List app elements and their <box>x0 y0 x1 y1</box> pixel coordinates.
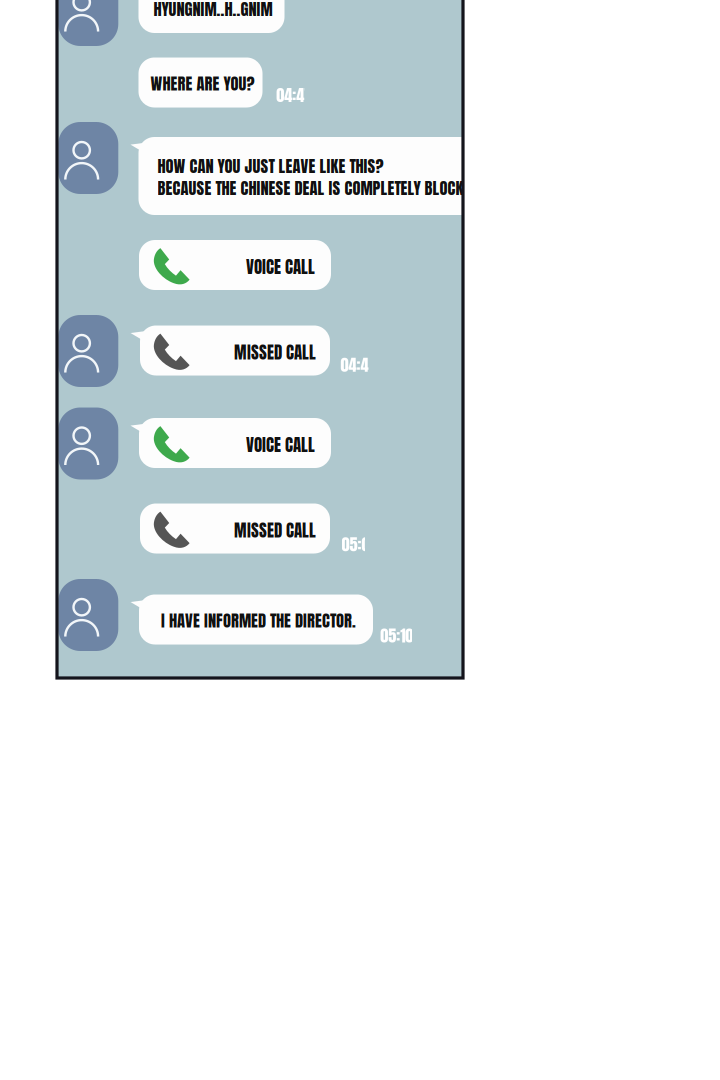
button[interactable]: VOICE CALL <box>139 418 331 468</box>
button[interactable]: Contact profile photo <box>58 0 118 46</box>
staticText: HOW CAN YOU JUST LEAVE LIKE THIS? <box>157 154 383 178</box>
staticText: MISSED CALL <box>234 518 316 543</box>
button[interactable]: Contact profile photo <box>58 407 118 479</box>
staticText: 04:47 <box>276 83 312 107</box>
button[interactable]: HYUNGNIM..H..GNIM <box>138 0 284 33</box>
button[interactable]: HOW CAN YOU JUST LEAVE LIKE THIS? <box>138 137 498 215</box>
button[interactable]: Contact profile photo <box>58 579 118 651</box>
staticText: MISSED CALL <box>234 340 316 365</box>
staticText: BECAUSE THE CHINESE DEAL IS COMPLETELY B… <box>157 176 482 200</box>
button[interactable]: MISSED CALL <box>140 325 330 375</box>
staticText: VOICE CALL <box>246 254 315 280</box>
staticText: I HAVE INFORMED THE DIRECTOR. <box>161 608 356 633</box>
button[interactable]: MISSED CALL <box>140 503 330 553</box>
staticText: HYUNGNIM..H..GNIM <box>153 0 272 21</box>
staticText: 05:10 <box>380 623 413 648</box>
staticText: 04:47 <box>340 353 376 377</box>
button[interactable]: VOICE CALL <box>139 240 331 290</box>
button[interactable]: I HAVE INFORMED THE DIRECTOR. <box>139 594 373 644</box>
staticText: VOICE CALL <box>246 432 315 458</box>
staticText: WHERE ARE YOU? <box>150 71 254 96</box>
button[interactable]: Contact profile photo <box>58 122 118 194</box>
staticText: 05:07 <box>342 532 378 557</box>
button[interactable]: WHERE ARE YOU? <box>138 57 262 107</box>
button[interactable]: Contact profile photo <box>58 315 118 387</box>
